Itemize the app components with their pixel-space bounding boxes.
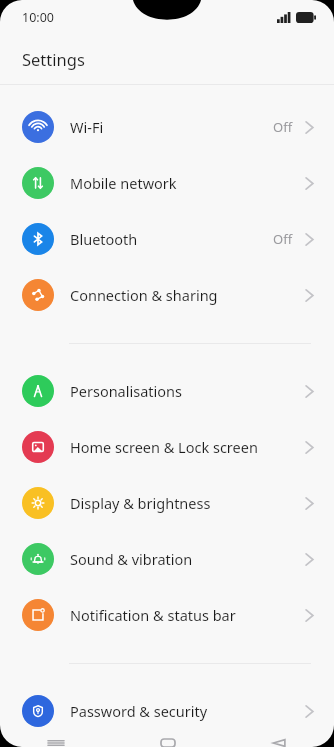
staticText: Display & brightness <box>70 493 305 513</box>
staticText: Password & security <box>70 701 305 721</box>
button[interactable]: Personalisations <box>0 363 334 419</box>
staticText: Mobile network <box>70 173 305 193</box>
button[interactable]: Display & brightness <box>0 475 334 531</box>
button[interactable]: Bluetooth <box>0 211 334 267</box>
staticText: Notification & status bar <box>70 605 305 625</box>
staticText: 10:00 <box>22 9 54 26</box>
staticText: Off <box>273 230 293 248</box>
staticText: Sound & vibration <box>70 549 305 569</box>
staticText: Home screen & Lock screen <box>70 437 305 457</box>
button[interactable]: Back <box>223 739 334 747</box>
staticText: Connection & sharing <box>70 285 305 305</box>
button[interactable]: Notification & status bar <box>0 587 334 643</box>
staticText: Bluetooth <box>70 229 273 249</box>
button[interactable]: Mobile network <box>0 155 334 211</box>
button[interactable]: Home <box>112 739 223 747</box>
button[interactable]: Wi-Fi <box>0 99 334 155</box>
button[interactable]: Connection & sharing <box>0 267 334 323</box>
button[interactable]: Home screen & Lock screen <box>0 419 334 475</box>
staticText: Personalisations <box>70 381 305 401</box>
button[interactable]: Password & security <box>0 683 334 739</box>
staticText: Wi-Fi <box>70 117 273 137</box>
staticText: Off <box>273 118 293 136</box>
button[interactable]: Sound & vibration <box>0 531 334 587</box>
staticText: Settings <box>22 48 85 70</box>
button[interactable]: Recent apps <box>0 739 112 747</box>
